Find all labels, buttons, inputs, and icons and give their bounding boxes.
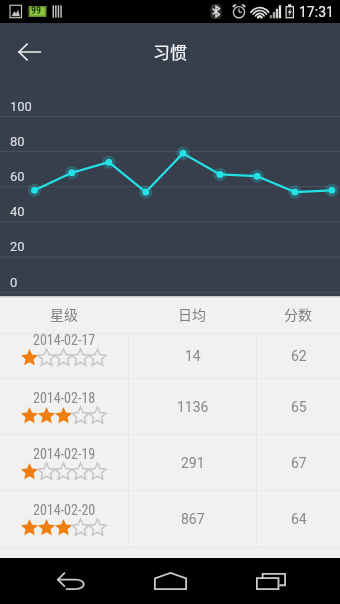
button[interactable]: 日均 <box>128 298 256 333</box>
staticText: 40 <box>10 204 25 219</box>
staticText: 291 <box>181 455 205 471</box>
staticText: 2014-02-20 <box>33 502 96 518</box>
staticText: 867 <box>181 511 205 527</box>
staticText: 20 <box>10 239 25 254</box>
staticText: 2014-02-18 <box>33 390 96 406</box>
staticText: 67 <box>291 455 307 471</box>
staticText: 62 <box>291 348 307 364</box>
staticText: 分数 <box>284 304 312 324</box>
button[interactable]: Home <box>130 558 210 604</box>
button[interactable]: 2014-02-19 <box>0 435 340 490</box>
staticText: 80 <box>10 134 25 149</box>
button[interactable]: 分数 <box>256 298 340 333</box>
button[interactable]: Recents <box>230 558 310 604</box>
staticText: 日均 <box>178 304 206 324</box>
button[interactable]: 2014-02-17 <box>0 334 340 378</box>
staticText: 2014-02-17 <box>33 332 96 348</box>
staticText: 64 <box>291 511 307 527</box>
staticText: 99 <box>31 5 42 17</box>
button[interactable]: 2014-02-20 <box>0 491 340 547</box>
button[interactable]: Back <box>9 32 49 72</box>
button[interactable]: 2014-02-18 <box>0 379 340 434</box>
staticText: 1136 <box>177 399 209 415</box>
button[interactable]: 星级 <box>0 298 128 333</box>
staticText: 65 <box>291 399 307 415</box>
staticText: 60 <box>10 169 25 184</box>
staticText: 17:31 <box>299 4 334 20</box>
staticText: 100 <box>10 99 32 114</box>
staticText: 0 <box>10 275 18 290</box>
staticText: 习惯 <box>153 39 187 64</box>
staticText: 2014-02-19 <box>33 446 96 462</box>
button[interactable]: Back <box>31 558 111 604</box>
staticText: 星级 <box>50 304 78 324</box>
staticText: 14 <box>185 348 201 364</box>
